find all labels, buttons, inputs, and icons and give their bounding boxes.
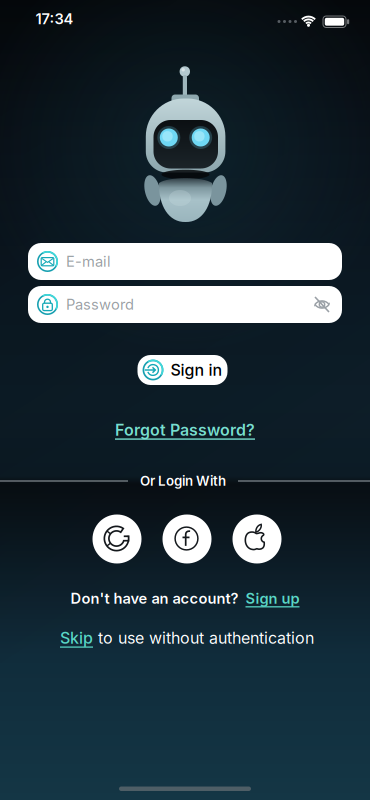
staticText: Forgot Password? bbox=[115, 421, 255, 439]
staticText: Don't have an account? bbox=[70, 590, 238, 607]
button[interactable]: Skip bbox=[60, 629, 93, 647]
staticText: 17:34 bbox=[35, 10, 73, 28]
staticText: Password bbox=[66, 296, 134, 313]
staticText: E-mail bbox=[66, 253, 111, 270]
button[interactable]: Sign in with Facebook bbox=[162, 514, 211, 563]
button[interactable]: Sign in bbox=[137, 355, 227, 385]
staticText: Skip bbox=[60, 629, 93, 647]
staticText: Sign up bbox=[245, 590, 299, 607]
staticText: to use without authentication bbox=[98, 629, 314, 647]
staticText: Sign in bbox=[170, 361, 222, 379]
button[interactable]: Sign in with Apple bbox=[232, 514, 281, 563]
button[interactable]: Forgot Password? bbox=[115, 421, 255, 439]
staticText: Or Login With bbox=[140, 473, 226, 489]
button[interactable]: Sign in with Google bbox=[92, 514, 141, 563]
button[interactable]: Show password bbox=[310, 292, 334, 316]
button[interactable]: Sign up bbox=[245, 590, 299, 607]
